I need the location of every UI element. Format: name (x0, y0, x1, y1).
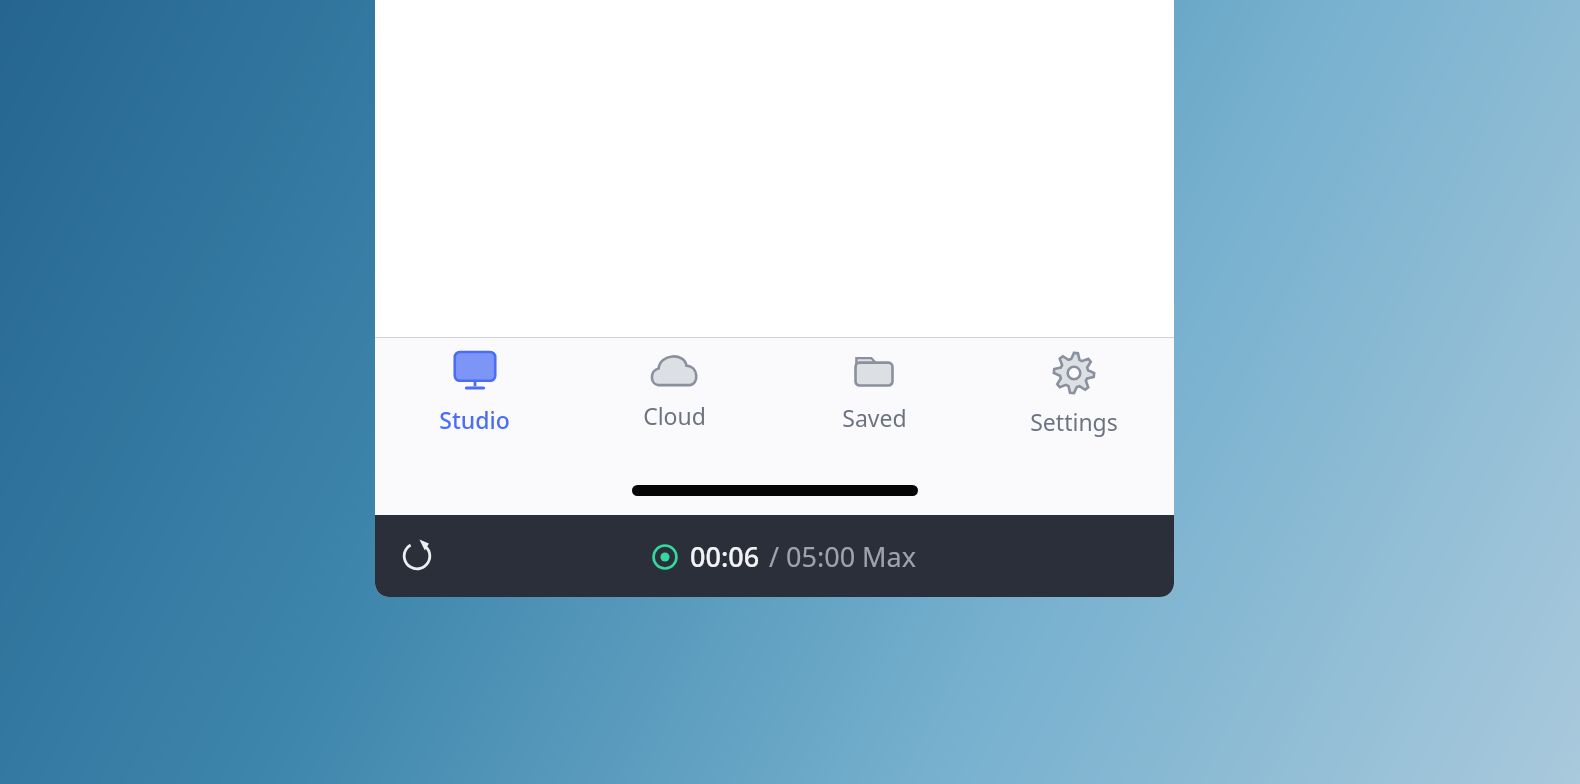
staticText: 00:06 (690, 538, 760, 575)
button[interactable]: Settings (974, 338, 1174, 448)
staticText: Saved (842, 402, 907, 433)
staticText: Studio (439, 404, 510, 435)
staticText: Cloud (643, 400, 706, 431)
button[interactable]: 00:06 (652, 538, 917, 575)
button[interactable]: Cloud (574, 338, 774, 448)
button[interactable]: Saved (774, 338, 974, 448)
staticText: Settings (1030, 406, 1118, 437)
button[interactable]: Studio (375, 338, 574, 448)
staticText: / 05:00 Max (769, 538, 917, 575)
button[interactable]: Restart recording (393, 532, 441, 580)
